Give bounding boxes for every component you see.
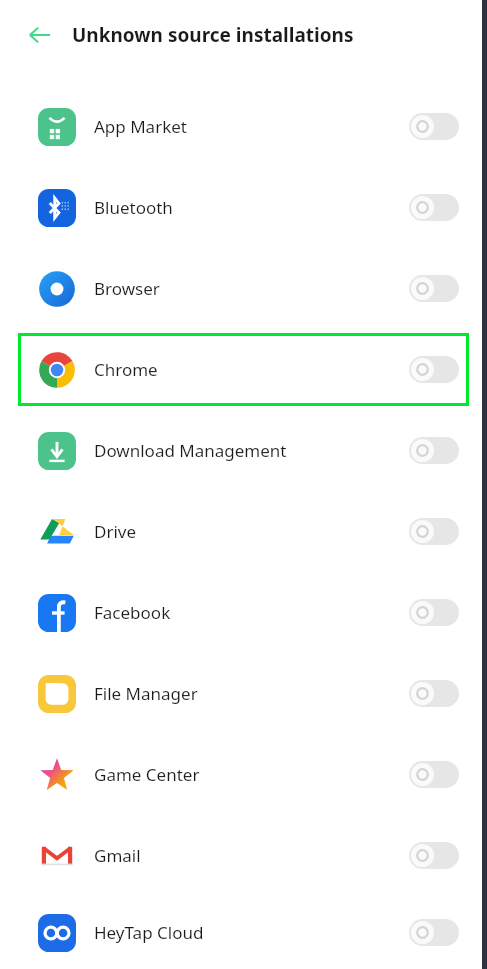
button[interactable]: Toggle	[409, 518, 459, 545]
button[interactable]: Drive	[18, 495, 469, 568]
button[interactable]: Browser	[18, 252, 469, 325]
button[interactable]: Gmail	[18, 819, 469, 892]
staticText: Drive	[94, 520, 137, 543]
button[interactable]: Toggle	[409, 599, 459, 626]
button[interactable]: Toggle	[409, 194, 459, 221]
staticText: Download Management	[94, 439, 287, 462]
button[interactable]: Download Management	[18, 414, 469, 487]
button[interactable]: Toggle	[409, 275, 459, 302]
staticText: Unknown source installations	[72, 22, 354, 48]
staticText: File Manager	[94, 682, 198, 705]
button[interactable]: Chrome	[18, 333, 469, 406]
button[interactable]: Toggle	[409, 919, 459, 946]
button[interactable]: Toggle	[409, 842, 459, 869]
staticText: Facebook	[94, 601, 171, 624]
staticText: Gmail	[94, 844, 141, 867]
button[interactable]: Back	[20, 15, 60, 55]
staticText: HeyTap Cloud	[94, 921, 204, 944]
button[interactable]: HeyTap Cloud	[18, 900, 469, 965]
button[interactable]: Toggle	[409, 761, 459, 788]
button[interactable]: Bluetooth	[18, 171, 469, 244]
staticText: App Market	[94, 115, 187, 138]
button[interactable]: Facebook	[18, 576, 469, 649]
button[interactable]: Toggle	[409, 680, 459, 707]
button[interactable]: File Manager	[18, 657, 469, 730]
staticText: Chrome	[94, 358, 158, 381]
button[interactable]: Toggle	[409, 437, 459, 464]
button[interactable]: Game Center	[18, 738, 469, 811]
staticText: Browser	[94, 277, 160, 300]
button[interactable]: Toggle	[409, 356, 459, 383]
staticText: Game Center	[94, 763, 200, 786]
button[interactable]: Toggle	[409, 113, 459, 140]
staticText: Bluetooth	[94, 196, 173, 219]
button[interactable]: App Market	[18, 90, 469, 163]
